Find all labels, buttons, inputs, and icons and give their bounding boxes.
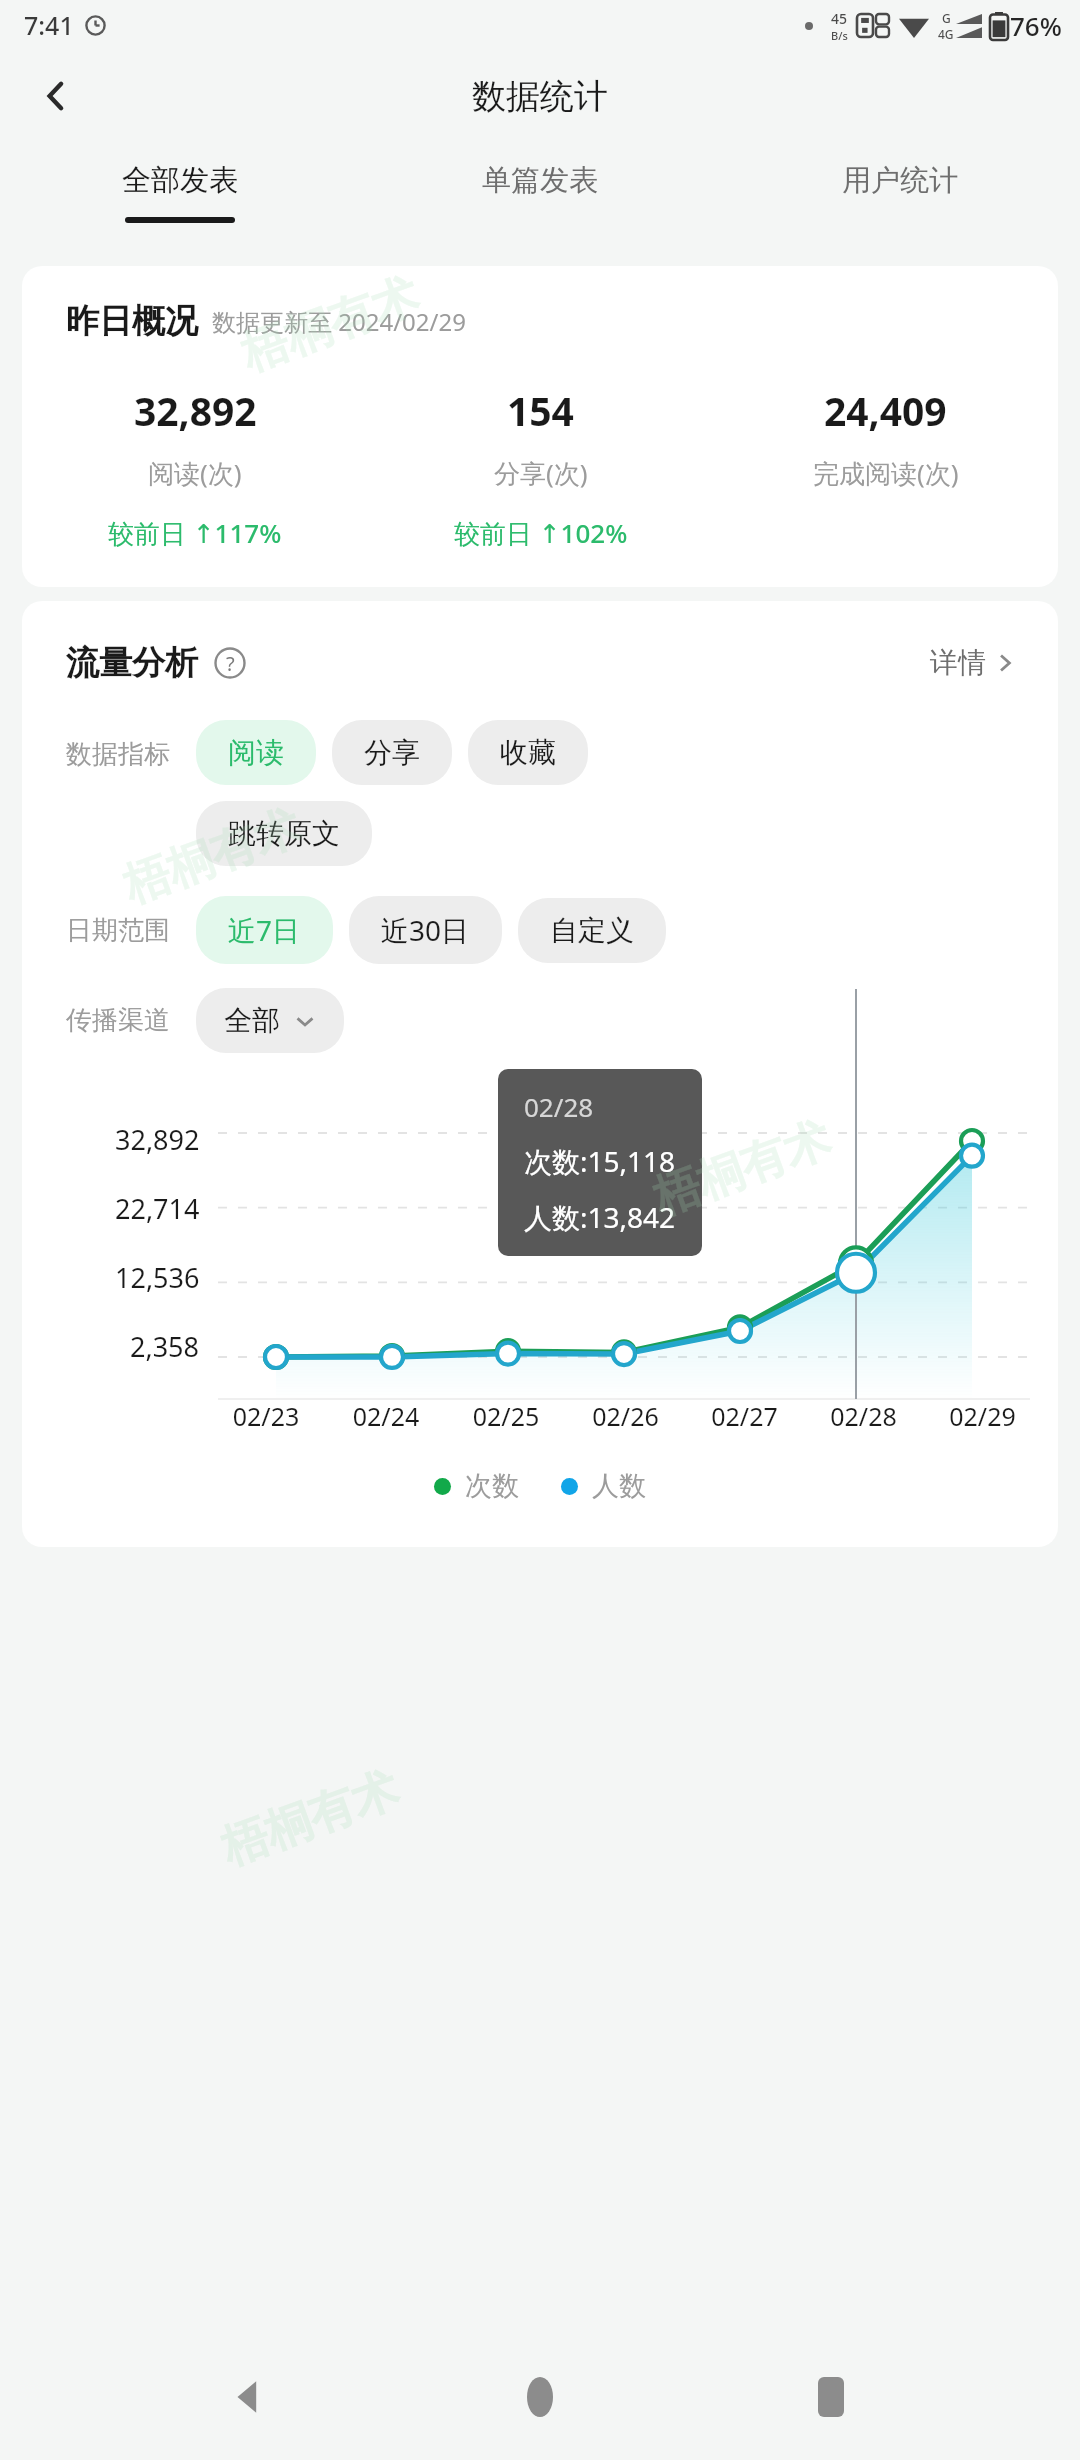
staticText: 梧桐有术 (646, 1110, 838, 1228)
staticText: 02/29 (923, 1399, 1042, 1433)
staticText: 人数 (592, 1469, 646, 1503)
staticText: 4G (938, 26, 954, 42)
staticText: 近30日 (381, 911, 470, 949)
button[interactable]: Help (212, 645, 248, 681)
staticText: 梧桐有术 (116, 798, 308, 916)
staticText: 次数 (465, 1469, 519, 1503)
button[interactable]: Back (207, 2355, 291, 2439)
button[interactable]: 详情 (924, 639, 1022, 686)
staticText: B/s (831, 28, 848, 43)
staticText: 完成阅读(次) (813, 455, 959, 491)
staticText: 跳转原文 (228, 816, 340, 851)
staticText: 传播渠道 (66, 1004, 170, 1037)
staticText: 梧桐有术 (234, 266, 426, 384)
staticText: 全部 (224, 1003, 280, 1038)
staticText: 分享(次) (494, 455, 588, 491)
button[interactable]: 单篇发表 (360, 142, 720, 250)
staticText: 02/28 (524, 1089, 594, 1124)
staticText: 32,892 (115, 1121, 200, 1158)
staticText: 02/26 (566, 1399, 685, 1433)
staticText: 数据更新至 2024/02/29 (212, 305, 466, 338)
staticText: 45 (831, 9, 848, 28)
button[interactable]: 近30日 (349, 896, 502, 964)
staticText: 7:41 (24, 8, 74, 42)
staticText: 收藏 (500, 735, 556, 770)
button[interactable]: 全部 (196, 988, 344, 1053)
staticText: 近7日 (228, 911, 301, 949)
button[interactable]: 全部发表 (0, 142, 360, 250)
button[interactable]: 阅读 (196, 720, 316, 785)
staticText: 02/27 (685, 1399, 804, 1433)
staticText: 数据统计 (472, 75, 608, 118)
staticText: 32,892 (134, 384, 257, 437)
staticText: 昨日概况 (66, 300, 198, 342)
staticText: 02/24 (326, 1399, 446, 1433)
staticText: 自定义 (550, 913, 634, 948)
button[interactable]: 跳转原文 (196, 801, 372, 866)
staticText: 02/23 (206, 1399, 326, 1433)
staticText: 用户统计 (842, 162, 958, 199)
staticText: 24,409 (824, 384, 947, 437)
staticText: 详情 (930, 645, 986, 680)
button[interactable]: Recents (789, 2355, 873, 2439)
button[interactable]: 用户统计 (720, 142, 1080, 250)
staticText: 次数:15,118 (524, 1142, 676, 1180)
button[interactable]: 近7日 (196, 896, 333, 964)
staticText: 2,358 (130, 1328, 200, 1365)
staticText: 154 (507, 384, 574, 437)
staticText: 02/28 (804, 1399, 923, 1433)
button[interactable]: Home (498, 2355, 582, 2439)
button[interactable]: Back (26, 66, 86, 126)
staticText: ? (226, 650, 235, 677)
staticText: 人数:13,842 (524, 1198, 676, 1236)
staticText: 76% (1010, 8, 1062, 43)
staticText: 数据指标 (66, 738, 170, 771)
staticText: 流量分析 (66, 642, 198, 684)
staticText: 较前日 ↑117% (108, 515, 282, 551)
staticText: 较前日 ↑102% (454, 515, 628, 551)
staticText: 日期范围 (66, 914, 170, 947)
staticText: 全部发表 (122, 162, 238, 199)
staticText: 22,714 (115, 1190, 200, 1227)
staticText: 单篇发表 (482, 162, 598, 199)
button[interactable]: 自定义 (518, 898, 666, 963)
staticText: 02/25 (446, 1399, 566, 1433)
staticText: G (942, 10, 951, 26)
staticText: 阅读(次) (148, 455, 242, 491)
staticText: 分享 (364, 735, 420, 770)
staticText: 12,536 (115, 1259, 200, 1296)
button[interactable]: 收藏 (468, 720, 588, 785)
staticText: 阅读 (228, 735, 284, 770)
staticText: 梧桐有术 (214, 1760, 406, 1878)
button[interactable]: 分享 (332, 720, 452, 785)
